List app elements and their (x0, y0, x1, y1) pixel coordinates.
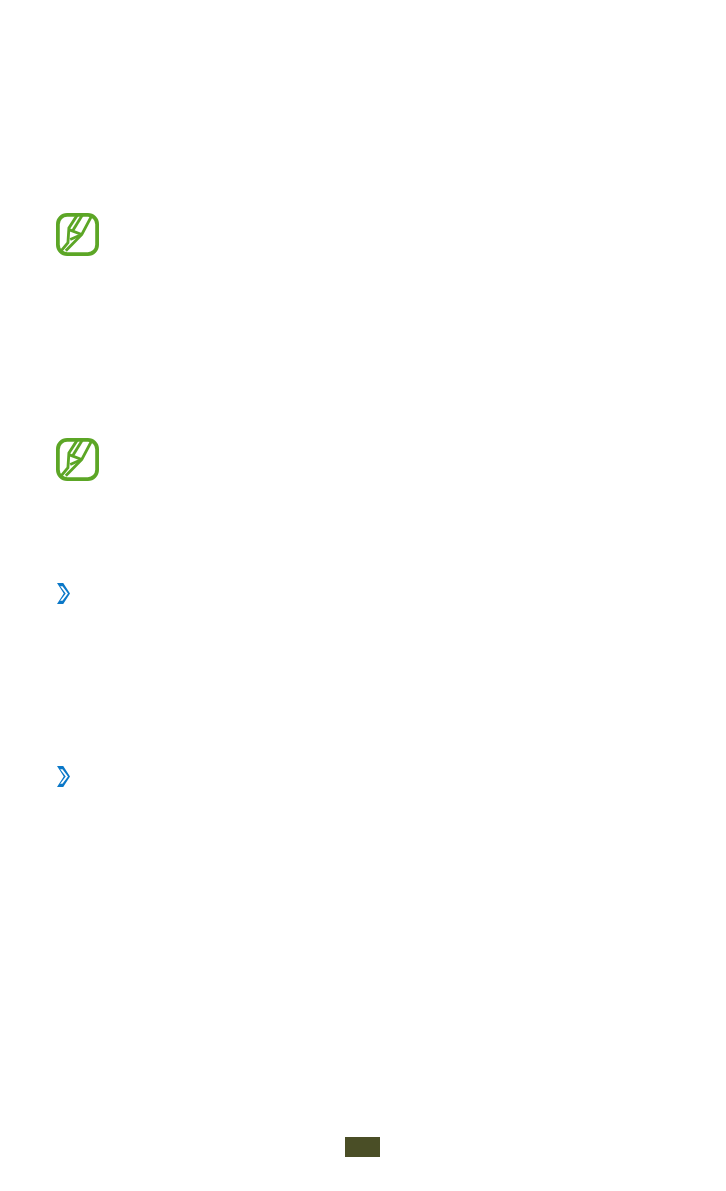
button[interactable]: S Note (56, 213, 99, 256)
button[interactable]: Next (57, 583, 70, 604)
button[interactable]: S Note (56, 438, 99, 481)
button[interactable]: Next (57, 766, 70, 787)
